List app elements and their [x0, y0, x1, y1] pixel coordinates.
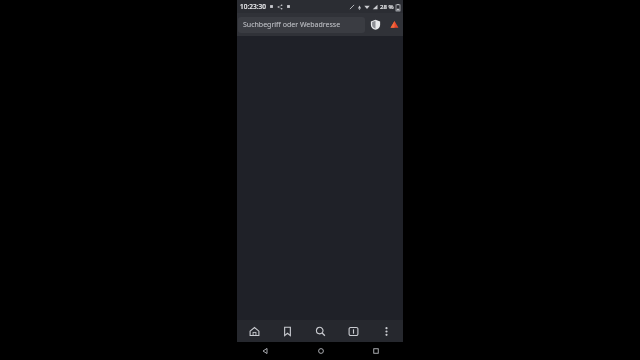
button[interactable]: Home	[237, 320, 271, 342]
button[interactable]: Recents	[348, 342, 403, 360]
button[interactable]: Brave Rewards	[385, 13, 403, 36]
button[interactable]: More options	[370, 320, 403, 342]
staticText: 28 %	[380, 3, 394, 11]
button[interactable]: Suchbegriff oder Webadresse eingeben	[238, 17, 365, 33]
button[interactable]: Search	[304, 320, 337, 342]
button[interactable]: Tabs	[337, 320, 370, 342]
button[interactable]: Bookmarks	[271, 320, 304, 342]
staticText: 10:23:30	[240, 2, 266, 11]
button[interactable]: Back	[237, 342, 293, 360]
button[interactable]: Brave Shields	[365, 13, 385, 36]
staticText: Suchbegriff oder Webadresse eingeben	[243, 20, 365, 30]
button[interactable]: Home	[293, 342, 348, 360]
